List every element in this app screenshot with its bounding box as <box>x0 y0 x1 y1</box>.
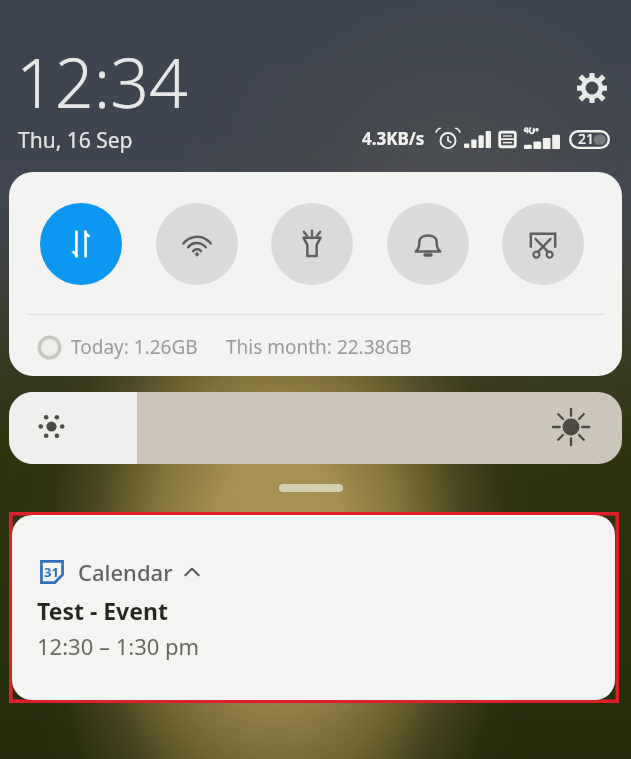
staticText: 4.3KB/s <box>362 127 425 150</box>
staticText: Today: 1.26GB <box>71 334 198 360</box>
staticText: Calendar <box>78 557 173 587</box>
staticText: This month: 22.38GB <box>226 334 412 360</box>
button[interactable]: Wi-Fi <box>156 203 238 285</box>
button[interactable]: Screenshot <box>502 203 584 285</box>
button[interactable]: Brightness <box>9 392 622 464</box>
button[interactable]: Settings <box>574 70 610 106</box>
staticText: 31 <box>44 563 59 581</box>
staticText: 12:30 – 1:30 pm <box>37 631 200 661</box>
staticText: Thu, 16 Sep <box>18 126 133 155</box>
staticText: Test - Event <box>37 595 168 626</box>
button[interactable]: 31 <box>12 515 615 700</box>
button[interactable]: Do not disturb <box>387 203 469 285</box>
staticText: 21 <box>578 129 595 148</box>
staticText: 12:34 <box>16 35 188 128</box>
button[interactable]: Mobile data <box>40 203 122 285</box>
button[interactable]: Flashlight <box>271 203 353 285</box>
